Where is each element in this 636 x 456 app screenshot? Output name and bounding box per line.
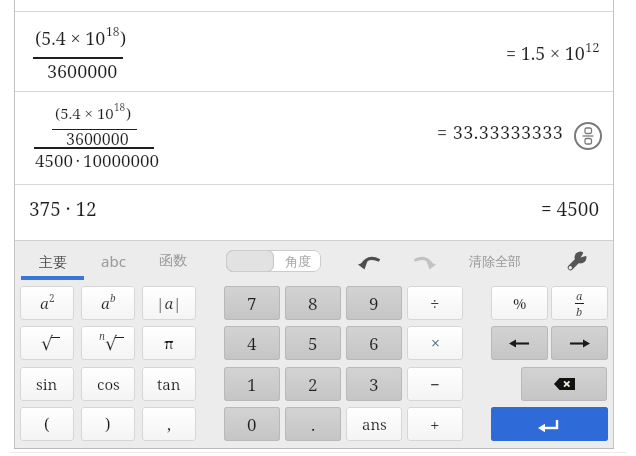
staticText: π [164, 333, 174, 353]
button[interactable]: , [142, 407, 196, 441]
staticText: = 1.5 × 10 [506, 41, 585, 66]
button[interactable]: + [407, 407, 463, 441]
button[interactable] [410, 250, 440, 272]
button[interactable]: % [491, 286, 548, 320]
staticText: n [99, 329, 105, 343]
staticText: 8 [308, 292, 318, 315]
staticText: ) [120, 26, 127, 51]
staticText: a [101, 293, 110, 313]
button[interactable]: 6 [346, 326, 402, 360]
staticText: b [576, 304, 583, 319]
staticText: 函数 [159, 252, 187, 270]
button[interactable]: |a| [142, 286, 196, 320]
button[interactable]: ) [81, 407, 135, 441]
button[interactable]: ans [346, 407, 402, 441]
staticText: + [430, 413, 440, 436]
button[interactable]: 7 [224, 286, 280, 320]
staticText: 4 [247, 332, 257, 355]
button[interactable] [565, 249, 589, 273]
button[interactable]: π [142, 326, 196, 360]
button[interactable]: 主要 [21, 246, 84, 280]
staticText: 主要 [39, 254, 67, 272]
button[interactable]: . [285, 407, 341, 441]
button[interactable]: cos [81, 367, 135, 401]
button[interactable] [574, 122, 602, 150]
staticText: (5.4 × 10 [35, 26, 106, 51]
staticText: ) [126, 103, 132, 123]
button[interactable]: 4 [224, 326, 280, 360]
staticText: 18 [114, 100, 126, 114]
staticText: ÷ [430, 292, 440, 315]
staticText: ) [105, 413, 111, 435]
staticText: cos [97, 374, 120, 394]
staticText: 375 · 12 [29, 196, 97, 222]
button[interactable]: 5 [285, 326, 341, 360]
staticText: = 4500 [541, 196, 600, 222]
button[interactable]: tan [142, 367, 196, 401]
button[interactable]: a [20, 286, 74, 320]
staticText: a [40, 293, 49, 313]
staticText: |a| [156, 293, 182, 313]
button[interactable]: 角度 [226, 250, 321, 272]
button[interactable]: × [407, 326, 463, 360]
button[interactable] [551, 326, 608, 360]
button[interactable] [491, 407, 608, 441]
button[interactable]: sin [20, 367, 74, 401]
staticText: sin [36, 374, 58, 394]
button[interactable]: 2 [285, 367, 341, 401]
staticText: 12 [585, 38, 600, 56]
button[interactable] [521, 367, 607, 401]
staticText: 9 [369, 292, 379, 315]
staticText: % [513, 293, 527, 313]
staticText: 4500 · 10000000 [35, 149, 159, 172]
staticText: ans [362, 414, 387, 434]
button[interactable]: 函数 [145, 246, 201, 276]
staticText: 2 [308, 373, 318, 396]
button[interactable]: ( [20, 407, 74, 441]
staticText: a [576, 288, 583, 303]
button[interactable]: 8 [285, 286, 341, 320]
button[interactable]: − [407, 367, 463, 401]
button[interactable]: n [81, 326, 135, 360]
staticText: tan [157, 374, 181, 394]
button[interactable]: abc [90, 246, 136, 276]
staticText: 3600000 [66, 128, 129, 150]
staticText: 6 [369, 332, 379, 355]
button[interactable]: 0 [224, 407, 280, 441]
staticText: 角度 [285, 253, 311, 269]
staticText: , [167, 413, 172, 435]
button[interactable] [354, 250, 384, 272]
button[interactable]: ÷ [407, 286, 463, 320]
button[interactable] [491, 326, 548, 360]
staticText: ( [44, 413, 50, 435]
staticText: 0 [247, 413, 257, 436]
staticText: 1 [247, 373, 257, 396]
button[interactable]: 9 [346, 286, 402, 320]
staticText: (5.4 × 10 [55, 103, 114, 123]
staticText: 清除全部 [469, 253, 521, 269]
button[interactable]: 清除全部 [460, 248, 530, 274]
staticText: = 33.33333333 [437, 120, 564, 145]
button[interactable]: 3 [346, 367, 402, 401]
staticText: 3600000 [47, 59, 118, 84]
staticText: √ [41, 332, 54, 354]
staticText: − [430, 373, 440, 396]
button[interactable]: a [81, 286, 135, 320]
button[interactable]: √ [20, 326, 74, 360]
staticText: × [431, 332, 440, 354]
staticText: 3 [369, 373, 379, 396]
staticText: 18 [106, 23, 120, 39]
button[interactable]: a [551, 286, 608, 320]
staticText: √ [105, 332, 118, 354]
staticText: 2 [49, 291, 55, 305]
staticText: . [311, 413, 316, 436]
staticText: 5 [308, 332, 318, 355]
button[interactable]: 1 [224, 367, 280, 401]
staticText: b [110, 291, 116, 305]
staticText: abc [101, 251, 126, 271]
staticText: 7 [247, 292, 257, 315]
